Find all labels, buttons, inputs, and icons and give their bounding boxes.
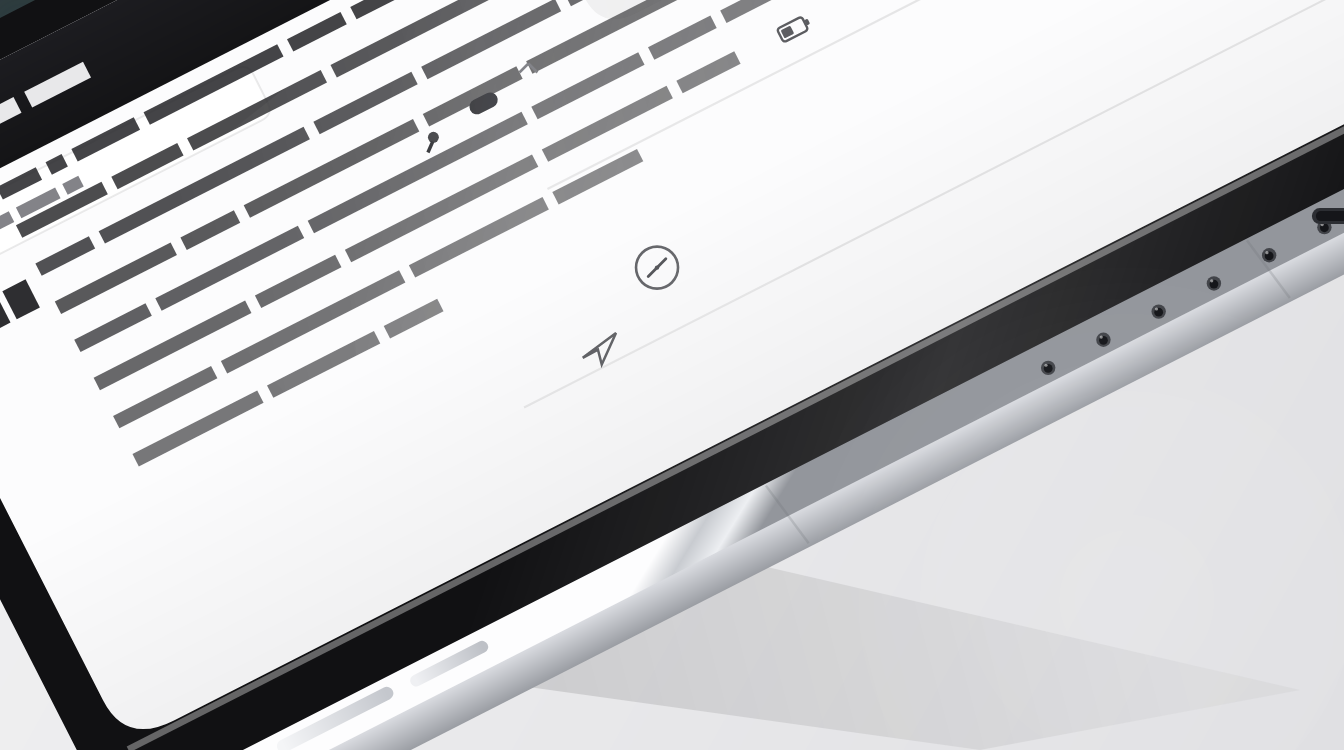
button[interactable]: App screen	[0, 0, 1344, 750]
button[interactable]: Phone product shot	[0, 0, 1344, 750]
